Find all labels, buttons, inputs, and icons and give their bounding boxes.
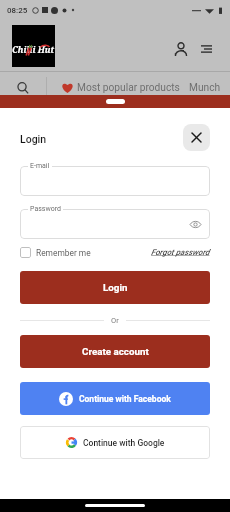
button[interactable]: Create account — [20, 335, 210, 368]
staticText: E-mail — [30, 162, 50, 170]
button[interactable]: Forgot password — [151, 248, 210, 257]
button[interactable]: Menu — [195, 38, 217, 60]
staticText: Or — [111, 316, 119, 325]
button[interactable]: Continue with Google — [20, 426, 210, 459]
staticText: Chilli Hut — [12, 44, 55, 56]
staticText: 08:25 — [7, 6, 28, 15]
button[interactable]: Login — [20, 271, 210, 304]
staticText: Remember me — [36, 248, 91, 258]
staticText: Login — [20, 133, 47, 145]
button[interactable]: Chilli Hut home — [12, 25, 55, 67]
button[interactable]: Remember me — [20, 247, 91, 258]
staticText: Most popular products — [77, 82, 180, 94]
staticText: Munch Box — [189, 82, 230, 94]
staticText: Create account — [82, 346, 149, 357]
button[interactable]: Close — [183, 124, 210, 151]
button[interactable]: Continue with Facebook — [20, 382, 210, 415]
staticText: Password — [30, 205, 61, 213]
button[interactable]: Show password — [188, 217, 202, 231]
staticText: Login — [103, 282, 128, 293]
button[interactable] — [20, 209, 210, 239]
staticText: Continue with Google — [83, 438, 165, 448]
button[interactable]: Account — [170, 38, 192, 60]
button[interactable]: Most popular products — [47, 72, 230, 103]
button[interactable]: Search — [0, 72, 46, 103]
staticText: Continue with Facebook — [79, 394, 171, 404]
button[interactable] — [20, 166, 210, 196]
